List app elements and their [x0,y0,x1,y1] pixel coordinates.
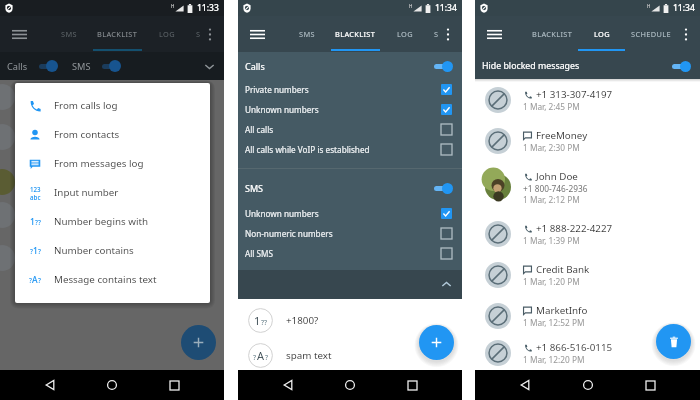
button[interactable]: John Doe [475,161,700,213]
button[interactable]: Home [338,373,362,397]
button[interactable]: BLACKLIST [528,16,577,52]
button[interactable]: Add [181,325,216,360]
staticText: Number begins with [54,215,149,228]
button[interactable]: Recents [400,373,424,397]
button[interactable]: Back [513,373,537,397]
staticText: ?? [261,318,268,328]
button[interactable]: SCHEDULE [429,16,438,52]
staticText: A [32,274,38,286]
staticText: All calls [245,124,274,135]
button[interactable]: More options [434,16,462,52]
button[interactable]: Back [38,373,62,397]
button[interactable]: Hide blocked messages [475,52,700,79]
staticText: ? [265,353,269,363]
button[interactable]: ? [238,341,462,370]
staticText: +1800? [286,314,319,327]
staticText: 1 Mar, 1:39 PM [523,235,580,246]
staticText: FreeMoney [536,129,588,142]
button[interactable]: Expand [203,60,216,73]
staticText: SMS [245,182,264,194]
staticText: ? [38,247,41,256]
staticText: BLACKLIST [532,29,573,39]
button[interactable]: From messages log [15,149,210,178]
staticText: From calls log [54,99,118,112]
staticText: Unknown numbers [245,104,319,115]
button[interactable]: 123 [15,178,210,207]
button[interactable]: +1 866-516-0115 [475,336,700,370]
button[interactable]: Open navigation drawer [238,16,276,52]
staticText: LOG [159,29,175,39]
button[interactable]: More options [196,16,224,52]
button[interactable]: From calls log [15,91,210,120]
button[interactable]: Toggle [37,59,58,73]
button[interactable]: Recents [162,373,186,397]
button[interactable]: Private numbers [238,79,462,99]
staticText: 11:34 [435,2,457,14]
staticText: SMS [299,29,315,39]
button[interactable]: Toggle [432,181,453,195]
staticText: 1 [33,245,38,257]
staticText: H [171,3,175,9]
button[interactable]: Open navigation drawer [475,16,513,52]
button[interactable]: BLACKLIST [93,16,142,52]
button[interactable]: LOG [380,16,429,52]
button[interactable]: Delete [656,324,691,359]
staticText: +1 800-746-2936 [523,183,588,194]
button[interactable]: All calls while VoIP is established [238,139,462,159]
staticText: BLACKLIST [335,29,376,39]
button[interactable]: Unknown numbers [238,203,462,223]
staticText: A [257,348,265,363]
button[interactable]: All calls [238,119,462,139]
button[interactable]: LOG [142,16,191,52]
button[interactable]: Open navigation drawer [0,16,38,52]
staticText: 1 Mar, 12:20 PM [523,354,585,365]
button[interactable]: ? [15,265,210,294]
button[interactable]: From contacts [15,120,210,149]
button[interactable]: Toggle [432,59,453,73]
button[interactable]: More options [672,16,700,52]
button[interactable]: 1 [15,207,210,236]
button[interactable]: LOG [577,16,626,52]
staticText: H [409,3,413,9]
button[interactable]: Home [576,373,600,397]
button[interactable]: SMS [238,174,462,201]
button[interactable]: SCHEDULE [191,16,200,52]
staticText: 1 [30,216,35,228]
button[interactable]: MarketInfo [475,295,700,336]
staticText: abc [30,193,41,201]
button[interactable]: 1 [238,299,462,341]
button[interactable]: Non-numeric numbers [238,223,462,243]
button[interactable]: Recents [638,373,662,397]
staticText: H [647,3,651,9]
staticText: LOG [594,29,610,39]
button[interactable]: +1 888-222-4227 [475,213,700,254]
button[interactable]: Unknown numbers [238,99,462,119]
button[interactable]: All SMS [238,243,462,263]
button[interactable]: Back [276,373,300,397]
button[interactable]: ? [15,236,210,265]
button[interactable]: SMS [44,16,93,52]
button[interactable]: Credit Bank [475,254,700,295]
button[interactable]: Home [100,373,124,397]
staticText: From messages log [54,157,144,170]
staticText: BLACKLIST [97,29,138,39]
staticText: ? [29,276,32,285]
staticText: Non-numeric numbers [245,228,333,239]
button[interactable]: Calls [238,52,462,79]
staticText: Number contains [54,244,134,257]
button[interactable]: Toggle [100,59,121,73]
staticText: All SMS [245,248,274,259]
button[interactable]: SCHEDULE [626,16,675,52]
button[interactable]: SMS [282,16,331,52]
staticText: SMS [61,29,77,39]
staticText: John Doe [536,170,578,183]
button[interactable]: Collapse [238,270,462,299]
button[interactable]: BLACKLIST [331,16,380,52]
staticText: Message contains text [54,273,157,286]
button[interactable]: +1 313-307-4197 [475,79,700,120]
button[interactable]: FreeMoney [475,120,700,161]
button[interactable]: Toggle [670,59,691,73]
staticText: +1 888-222-4227 [536,222,613,235]
staticText: Hide blocked messages [482,60,580,72]
button[interactable]: Add [419,325,454,360]
